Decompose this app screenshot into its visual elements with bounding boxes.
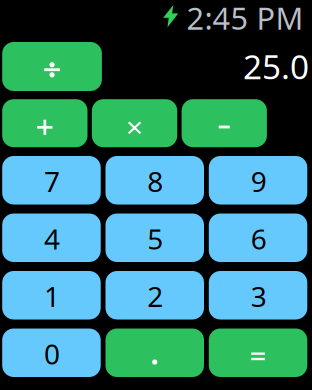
staticText: 3 [251,278,267,315]
button[interactable]: 9 [209,156,307,204]
staticText: 2:45 PM [186,0,303,38]
button[interactable]: 6 [209,213,307,262]
button[interactable]: Subtract [182,99,267,147]
button[interactable]: 0 [2,328,101,377]
button[interactable]: 7 [2,156,101,204]
staticText: 5 [147,220,163,257]
button[interactable]: Add [2,99,87,147]
button[interactable]: Multiply [92,99,177,147]
button[interactable]: 3 [209,271,307,319]
staticText: 2 [147,278,163,315]
staticText: 9 [251,163,267,200]
button[interactable]: 8 [105,156,204,204]
button[interactable]: 4 [2,213,101,262]
button[interactable]: Equals [209,328,307,377]
staticText: 7 [44,163,60,200]
staticText: 6 [251,220,267,257]
button[interactable]: Divide [2,42,102,91]
button[interactable]: 2 [105,271,204,319]
button[interactable]: Decimal point [105,328,204,377]
staticText: 8 [147,163,163,200]
staticText: 25.0 [243,44,309,88]
button[interactable]: 5 [105,213,204,262]
staticText: 4 [44,220,60,257]
staticText: 1 [44,278,60,315]
staticText: 0 [44,335,60,372]
button[interactable]: 1 [2,271,101,319]
